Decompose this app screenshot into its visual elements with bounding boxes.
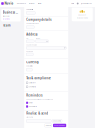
staticText: Attach a file — [26, 116, 33, 118]
button[interactable]: Home — [0, 0, 16, 7]
staticText: Email — [29, 102, 32, 104]
staticText: Clients — [38, 3, 42, 4]
button[interactable]: Team — [1, 24, 22, 27]
staticText: Dashboard — [17, 3, 26, 4]
button[interactable]: Dashboard — [16, 0, 27, 7]
staticText: Billing details — [3, 15, 10, 17]
staticText: Show tax ID — [29, 86, 36, 88]
button[interactable]: Push alerts — [26, 105, 66, 108]
staticText: Invoices — [29, 3, 35, 4]
staticText: Branding — [3, 18, 10, 20]
staticText: Post code — [26, 51, 33, 52]
staticText: Business profile — [3, 11, 19, 14]
staticText: Jordan Mercer — [81, 3, 92, 4]
button[interactable]: Save changes — [53, 124, 66, 127]
staticText: GOLDLEAF — [78, 14, 86, 16]
staticText: Country / region — [26, 44, 37, 46]
staticText: Default billing — [26, 65, 33, 67]
button[interactable]: Cancel — [45, 124, 52, 127]
staticText: Company details — [26, 18, 51, 21]
staticText: Legal entity — [26, 9, 33, 10]
staticText: invoice preview — [77, 17, 88, 19]
staticText: Collect VAT — [29, 82, 36, 84]
button[interactable]: Show tax ID — [26, 86, 66, 88]
staticText: Push alerts — [29, 106, 37, 107]
button[interactable]: Clients — [36, 0, 43, 7]
staticText: Nuvio — [5, 2, 14, 5]
button[interactable]: Jordan Mercer — [80, 0, 94, 7]
staticText: Address — [26, 33, 37, 36]
staticText: Choose how reminders are delivered — [26, 98, 53, 100]
staticText: Tax & compliance — [26, 76, 51, 80]
button[interactable]: Collect VAT — [26, 82, 66, 84]
staticText: Choose file — [53, 120, 61, 122]
staticText: Currency — [26, 60, 38, 64]
staticText: Street — [35, 37, 39, 39]
staticText: Shown on invoices — [26, 23, 39, 24]
staticText: Team — [3, 24, 11, 27]
button[interactable]: Choose file — [52, 119, 62, 123]
button[interactable]: Help — [70, 0, 76, 7]
button[interactable]: Business profile — [1, 9, 21, 21]
button[interactable]: Email — [26, 102, 66, 104]
staticText: Reminders — [26, 94, 42, 97]
button[interactable]: Invoices — [27, 0, 36, 7]
staticText: Finalise & send — [26, 112, 48, 115]
staticText: Cancel — [46, 125, 51, 126]
staticText: No. — [26, 37, 28, 39]
button[interactable]: Notifications — [76, 0, 80, 7]
staticText: Save changes — [54, 125, 65, 126]
staticText: Help — [71, 3, 74, 4]
